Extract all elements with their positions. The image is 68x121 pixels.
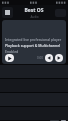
- staticText: Playback support & Multichannel routing: [5, 43, 63, 48]
- staticText: Audio: [30, 15, 39, 19]
- button[interactable]: Previous: [45, 54, 53, 62]
- staticText: Enabled: [5, 49, 19, 54]
- button[interactable]: Expand: [61, 120, 66, 121]
- button[interactable]: Integrated live professional player: [2, 20, 66, 64]
- staticText: 0:00: [37, 56, 43, 60]
- button[interactable]: Next: [55, 54, 63, 62]
- staticText: Integrated live professional player: [5, 37, 62, 42]
- staticText: Best OS: [24, 7, 44, 14]
- button[interactable]: Play: [5, 54, 14, 62]
- button[interactable]: Menu: [2, 7, 13, 18]
